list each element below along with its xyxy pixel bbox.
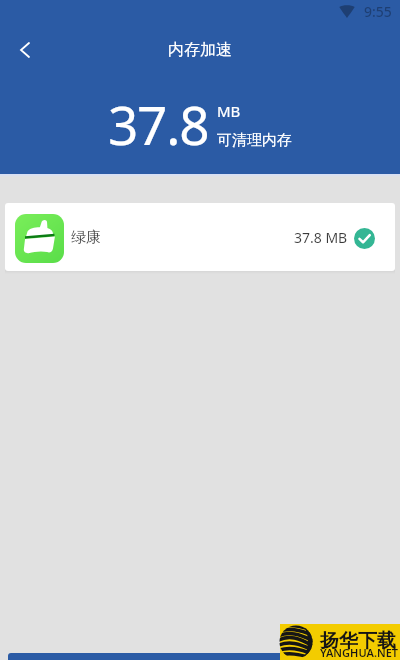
staticText: MB [217, 101, 241, 121]
button[interactable]: Boost [8, 653, 392, 660]
staticText: 扬华下载 [320, 629, 396, 653]
staticText: YANGHUA.NET [320, 645, 399, 660]
button[interactable]: Back [4, 29, 46, 71]
button[interactable]: 绿康 [5, 203, 395, 271]
staticText: 37.8 MB [294, 228, 348, 247]
staticText: 绿康 [71, 228, 101, 247]
staticText: 9:55 [364, 2, 392, 21]
staticText: 可清理内存 [217, 131, 292, 150]
staticText: 内存加速 [168, 40, 232, 60]
staticText: 37.8 [108, 88, 209, 160]
